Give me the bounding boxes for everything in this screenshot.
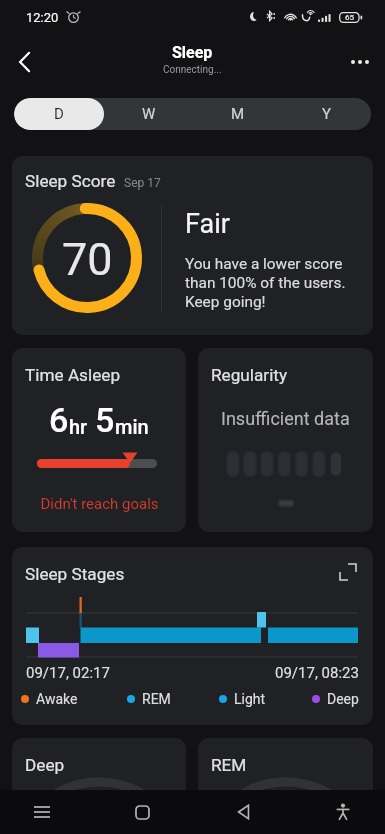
staticText: min bbox=[115, 415, 149, 438]
staticText: 12:20 bbox=[26, 10, 59, 25]
staticText: M bbox=[231, 105, 245, 123]
staticText: W bbox=[142, 105, 156, 123]
button[interactable]: Expand chart bbox=[334, 558, 362, 586]
staticText: hr bbox=[69, 415, 88, 438]
button[interactable]: Recent apps bbox=[24, 794, 60, 830]
staticText: Deep bbox=[25, 755, 65, 775]
button[interactable]: Accessibility bbox=[325, 794, 361, 830]
staticText: 70 bbox=[62, 233, 113, 286]
button[interactable]: Light bbox=[219, 691, 266, 707]
staticText: Awake bbox=[36, 691, 78, 707]
staticText: Deep bbox=[327, 691, 359, 707]
staticText: Didn't reach goals bbox=[40, 495, 159, 513]
staticText: Y bbox=[322, 105, 332, 123]
button[interactable]: D bbox=[14, 98, 104, 130]
staticText: REM bbox=[142, 691, 171, 707]
staticText: 09/17, 08:23 bbox=[275, 664, 359, 682]
button[interactable]: Home bbox=[124, 794, 160, 830]
button[interactable]: REM bbox=[127, 691, 171, 707]
button[interactable]: Awake bbox=[21, 691, 78, 707]
button[interactable]: Deep bbox=[312, 691, 359, 707]
staticText: 09/17, 02:17 bbox=[26, 664, 110, 682]
staticText: REM bbox=[211, 755, 247, 775]
button[interactable]: Back bbox=[5, 43, 43, 81]
staticText: Sleep bbox=[172, 43, 213, 62]
staticText: Sleep Stages bbox=[25, 564, 125, 584]
button[interactable]: Back bbox=[225, 794, 261, 830]
staticText: Time Asleep bbox=[25, 365, 121, 385]
button[interactable]: Regularity bbox=[198, 348, 373, 532]
button[interactable]: More options bbox=[341, 43, 379, 81]
staticText: 5 bbox=[95, 400, 115, 440]
staticText: D bbox=[54, 105, 64, 123]
staticText: Sep 17 bbox=[124, 176, 161, 190]
staticText: 65 bbox=[345, 13, 354, 22]
button[interactable]: REM bbox=[198, 738, 373, 834]
button[interactable]: Deep bbox=[12, 738, 186, 834]
staticText: Sleep Score bbox=[25, 171, 116, 191]
staticText: Connecting... bbox=[163, 64, 222, 76]
staticText: Insufficient data bbox=[221, 408, 350, 429]
staticText: Regularity bbox=[211, 365, 288, 385]
button[interactable]: Sleep Score bbox=[12, 156, 373, 335]
staticText: Fair bbox=[185, 208, 230, 240]
staticText: You have a lower score than 100% of the … bbox=[185, 255, 346, 311]
staticText: Light bbox=[234, 691, 266, 707]
button[interactable]: M bbox=[193, 98, 282, 130]
button[interactable]: Sleep Stages bbox=[12, 547, 373, 725]
button[interactable]: Y bbox=[282, 98, 371, 130]
button[interactable]: Time Asleep bbox=[12, 348, 186, 532]
staticText: 6 bbox=[49, 400, 69, 440]
button[interactable]: W bbox=[104, 98, 193, 130]
